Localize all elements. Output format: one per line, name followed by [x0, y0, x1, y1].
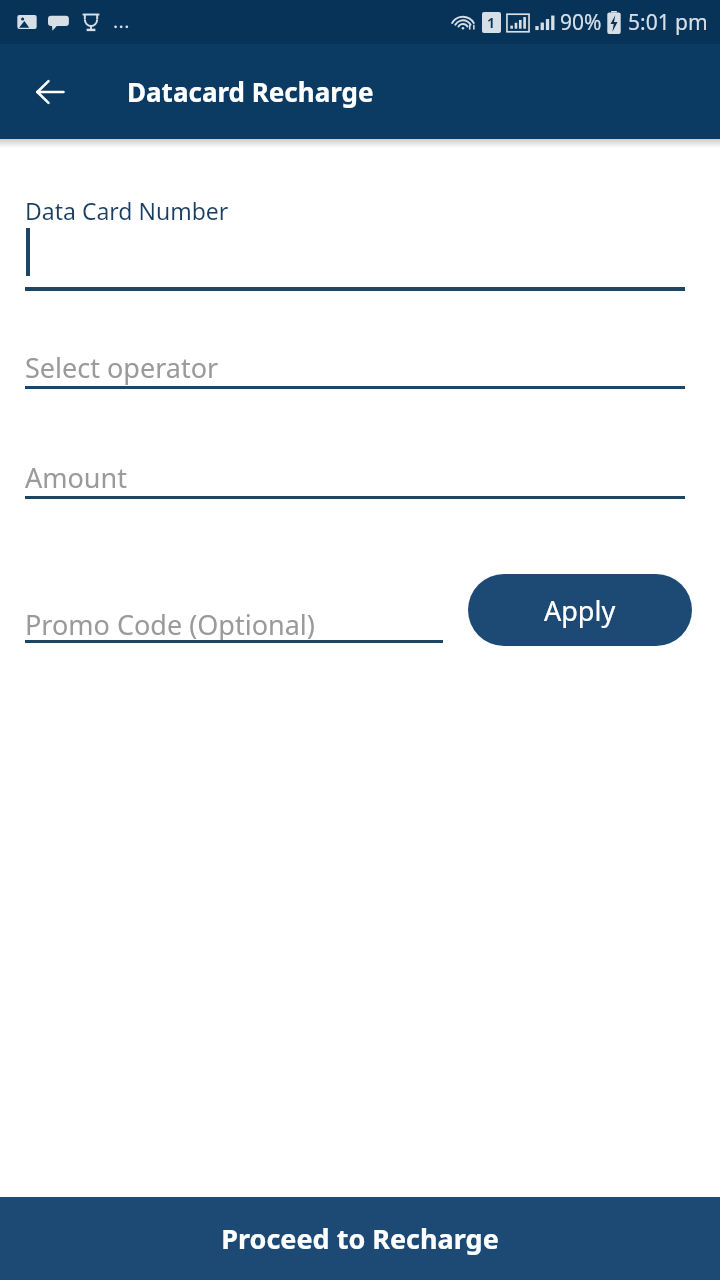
button[interactable]: Select operator	[25, 338, 685, 396]
staticText: Select operator	[25, 349, 219, 386]
button[interactable]: Amount	[25, 448, 685, 506]
staticText: Apply	[544, 592, 616, 629]
staticText: Datacard Recharge	[127, 74, 374, 109]
staticText: Promo Code (Optional)	[25, 606, 315, 643]
button[interactable]	[25, 228, 685, 288]
staticText: Proceed to Recharge	[221, 1220, 499, 1257]
button[interactable]: Apply	[468, 574, 692, 646]
button[interactable]: Promo Code (Optional)	[25, 595, 443, 653]
staticText: Data Card Number	[25, 195, 229, 226]
staticText: 5:01 pm	[628, 8, 708, 37]
staticText: 1	[487, 13, 496, 32]
staticText: 90%	[560, 8, 602, 37]
button[interactable]: Back	[22, 64, 78, 120]
staticText: Amount	[25, 459, 127, 496]
button[interactable]: Proceed to Recharge	[0, 1197, 720, 1280]
